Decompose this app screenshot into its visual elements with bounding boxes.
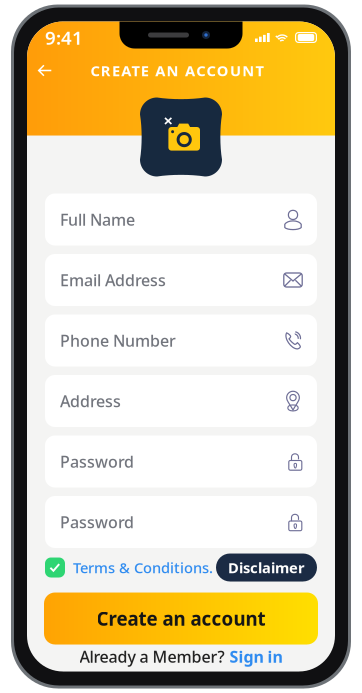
staticText: CREATE AN ACCOUNT xyxy=(90,61,263,80)
button[interactable]: Terms & Conditions. xyxy=(45,552,213,582)
staticText: Disclaimer xyxy=(228,558,305,577)
button[interactable]: Password xyxy=(45,496,317,548)
button[interactable]: Back xyxy=(30,54,60,86)
button[interactable]: Email Address xyxy=(45,254,317,306)
staticText: Email Address xyxy=(60,269,166,291)
button[interactable]: Password xyxy=(45,435,317,487)
staticText: Create an account xyxy=(96,606,265,631)
button[interactable]: Create an account xyxy=(44,592,318,644)
button[interactable]: Already a Member? xyxy=(79,644,282,668)
button[interactable]: Disclaimer xyxy=(216,553,317,581)
staticText: Full Name xyxy=(60,209,135,230)
staticText: 9:41 xyxy=(45,25,83,50)
staticText: Terms & Conditions. xyxy=(73,558,213,577)
button[interactable]: Full Name xyxy=(45,193,317,245)
staticText: Sign in xyxy=(229,646,282,667)
button[interactable]: Address xyxy=(45,375,317,427)
staticText: Phone Number xyxy=(60,330,176,351)
staticText: Address xyxy=(60,390,121,412)
button[interactable]: Phone Number xyxy=(45,314,317,366)
staticText: Password xyxy=(60,511,134,533)
staticText: Password xyxy=(60,451,134,472)
staticText: Already a Member? xyxy=(79,646,224,667)
